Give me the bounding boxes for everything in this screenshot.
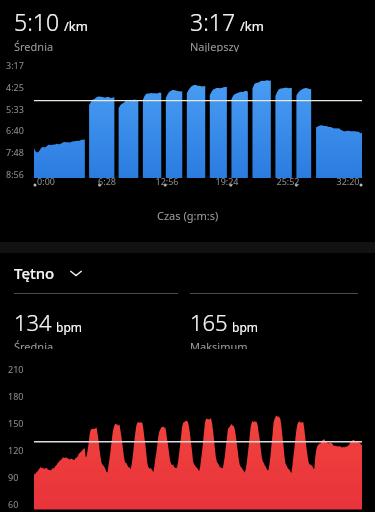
staticText: 5:33 — [6, 103, 24, 115]
staticText: 60 — [8, 498, 19, 510]
staticText: 32:20 — [333, 175, 363, 187]
staticText: /km — [64, 17, 88, 35]
staticText: 6:28 — [92, 175, 122, 187]
staticText: 0:00 — [31, 175, 61, 187]
staticText: 7:48 — [6, 146, 24, 158]
staticText: 3:17 — [6, 59, 24, 71]
staticText: 134 — [14, 307, 52, 337]
staticText: 120 — [8, 444, 24, 456]
staticText: 6:40 — [6, 124, 24, 136]
staticText: 3:17 — [190, 6, 236, 37]
staticText: 5:10 — [14, 6, 60, 37]
staticText: Tętno — [14, 263, 55, 283]
staticText: 25:52 — [273, 175, 303, 187]
staticText: 210 — [8, 363, 24, 375]
staticText: 12:56 — [152, 175, 182, 187]
staticText: bpm — [232, 319, 258, 335]
staticText: Średnia — [14, 339, 54, 349]
staticText: 19:24 — [212, 175, 242, 187]
staticText: 8:56 — [6, 168, 24, 180]
staticText: Najlepszy — [190, 39, 240, 52]
staticText: 90 — [8, 471, 19, 483]
staticText: 150 — [8, 417, 24, 429]
staticText: /km — [240, 17, 264, 35]
other: Expand heart rate — [69, 266, 83, 280]
staticText: Średnia — [14, 39, 54, 52]
staticText: 180 — [8, 390, 24, 402]
button[interactable]: Tętno — [0, 253, 375, 293]
staticText: 165 — [190, 307, 228, 337]
staticText: Maksimum — [190, 339, 248, 349]
staticText: 4:25 — [6, 81, 24, 93]
staticText: bpm — [56, 319, 82, 335]
staticText: Czas (g:m:s) — [157, 208, 219, 223]
